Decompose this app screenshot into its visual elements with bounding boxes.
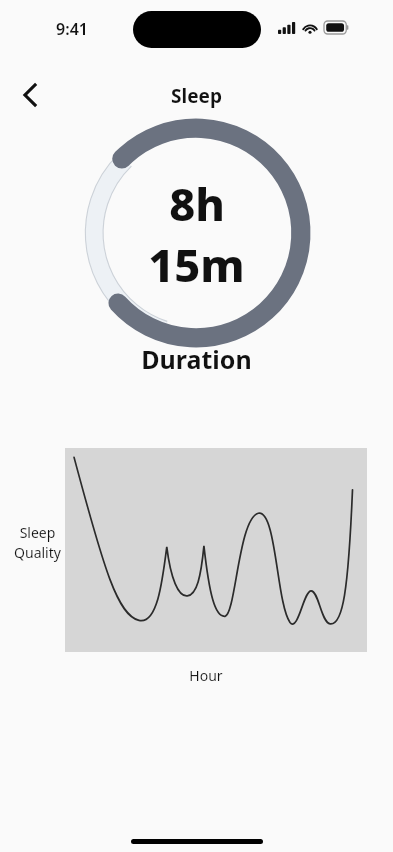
staticText: Sleep Quality: [14, 523, 61, 562]
button[interactable]: Sleep duration 8 hours 15 minutes: [80, 117, 312, 349]
button[interactable]: Back: [10, 75, 50, 115]
staticText: 8h: [169, 173, 225, 234]
staticText: 15m: [148, 234, 245, 295]
staticText: 9:41: [56, 18, 88, 40]
staticText: Duration: [141, 342, 252, 376]
staticText: Hour: [189, 666, 223, 685]
staticText: Sleep: [171, 83, 222, 109]
